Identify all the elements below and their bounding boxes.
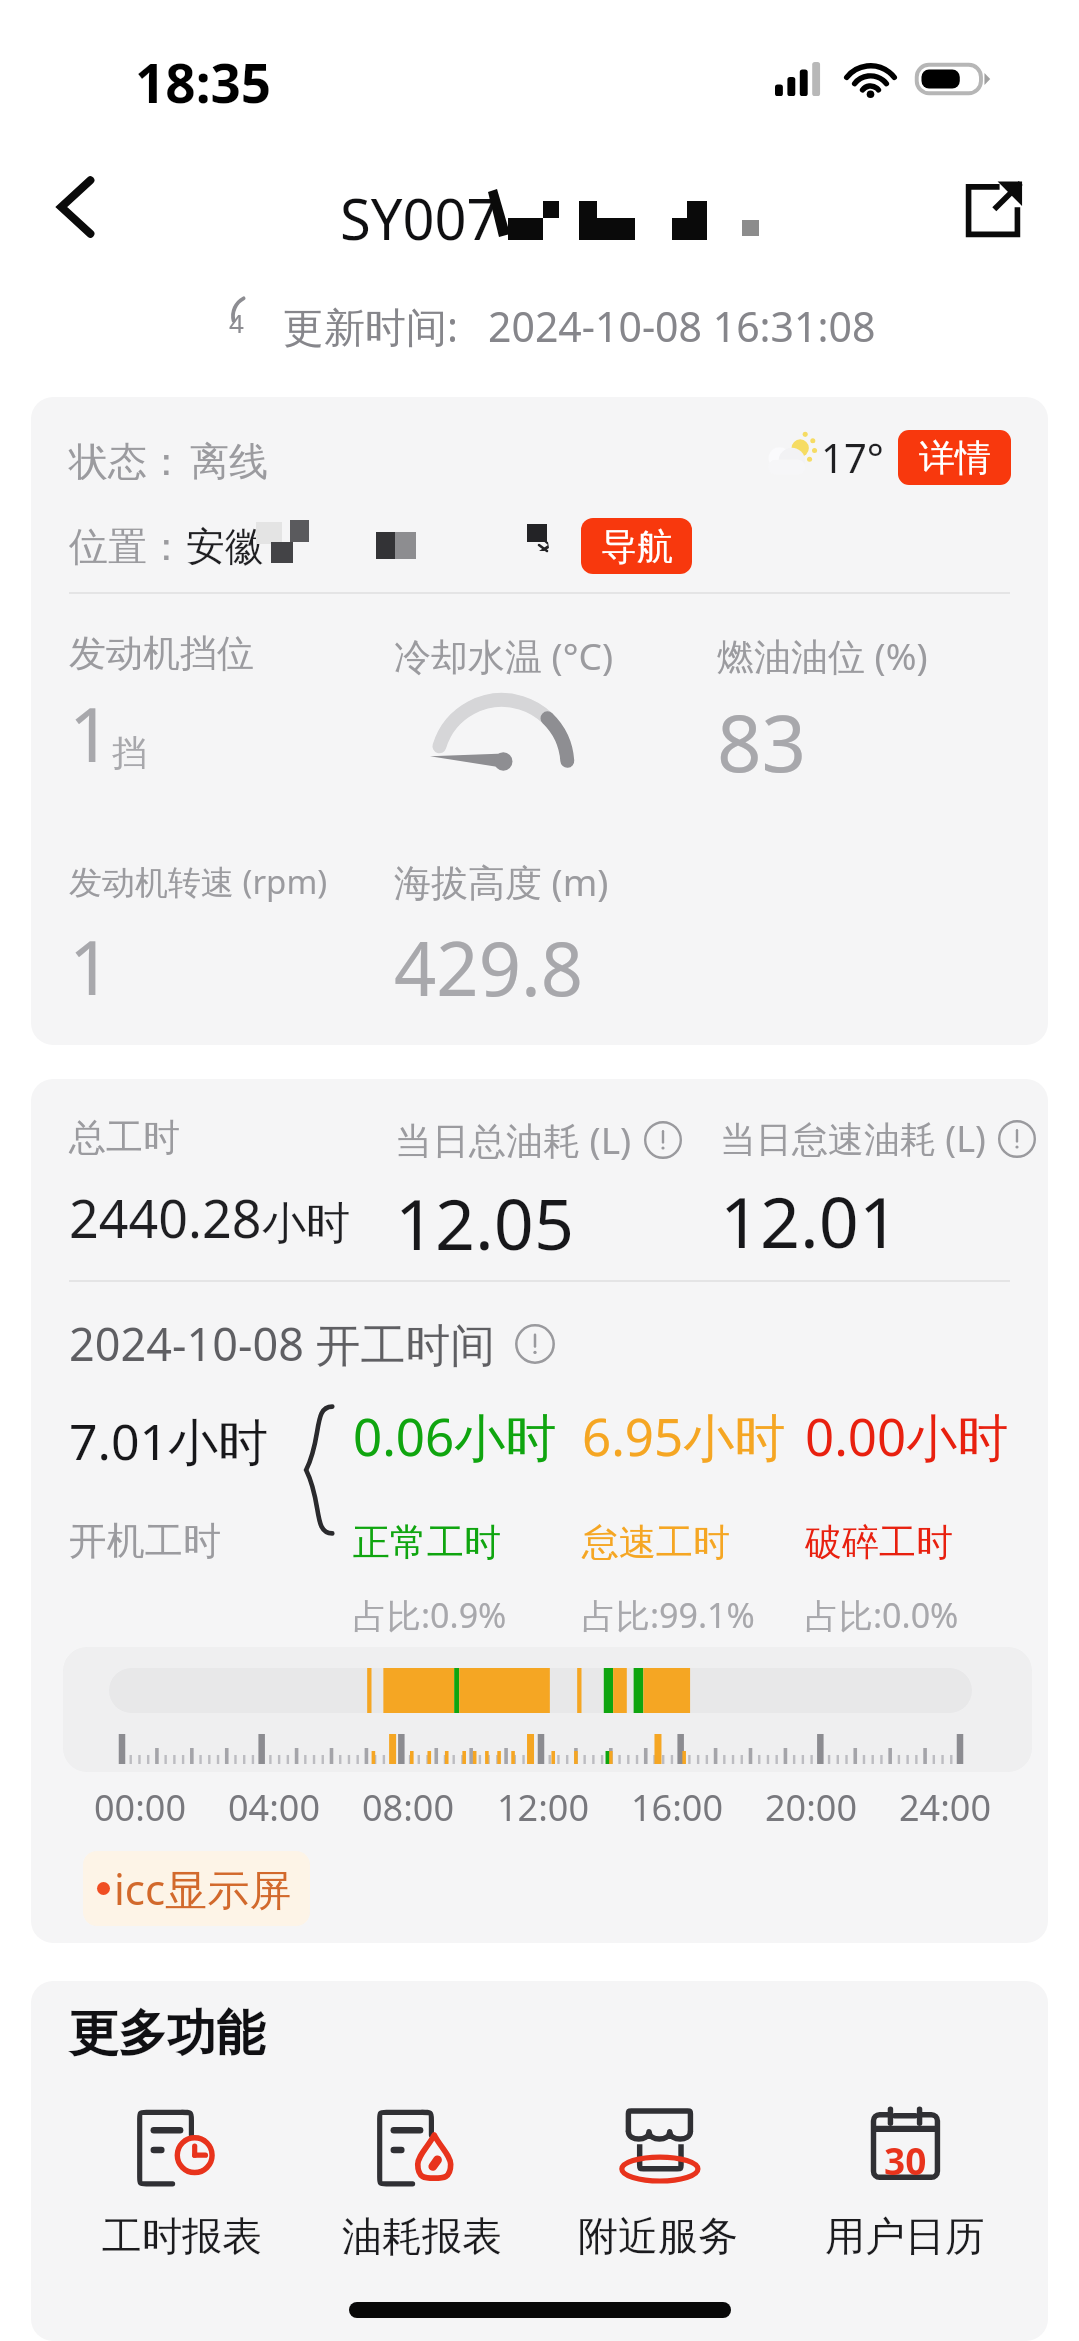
staticText: 占比:0.9%	[353, 1592, 507, 1638]
staticText: 12.01	[720, 1173, 899, 1268]
button[interactable]: icc显示屏	[83, 1851, 310, 1926]
staticText: 2024-10-08 开工时间	[69, 1313, 496, 1374]
staticText: 7.01小时	[69, 1407, 269, 1475]
staticText: 更多功能	[69, 2003, 265, 2065]
staticText: 2440.28	[69, 1182, 262, 1253]
staticText: 12:00	[497, 1783, 590, 1832]
staticText: 附近服务	[578, 2211, 738, 2261]
staticText: 油耗报表	[342, 2211, 502, 2261]
staticText: 海拔高度 (m)	[394, 856, 609, 907]
staticText: 破碎工时	[805, 1519, 953, 1566]
button[interactable]: Back	[16, 167, 136, 280]
staticText: 当日怠速油耗 (L)	[720, 1114, 986, 1163]
staticText: 12.05	[395, 1175, 574, 1270]
staticText: 更新时间:	[283, 298, 458, 354]
staticText: 冷却水温 (°C)	[394, 630, 614, 681]
staticText: 燃油油位 (%)	[717, 630, 928, 681]
staticText: 0.00小时	[805, 1401, 1009, 1471]
staticText: 占比:99.1%	[582, 1592, 755, 1638]
button[interactable]: 附近服务	[558, 2103, 758, 2261]
staticText: 1	[69, 683, 112, 784]
staticText: 详情	[919, 435, 991, 480]
staticText: 怠速工时	[582, 1519, 730, 1566]
staticText: 发动机转速 (rpm)	[69, 859, 328, 904]
button[interactable]: 油耗报表	[322, 2103, 522, 2261]
staticText: 24:00	[899, 1783, 992, 1832]
staticText: 位置：	[69, 522, 186, 571]
staticText: 状态：	[69, 437, 186, 486]
staticText: 4	[229, 305, 244, 340]
staticText: 08:00	[362, 1783, 455, 1832]
button[interactable]: 详情	[898, 430, 1011, 485]
staticText: icc显示屏	[114, 1860, 292, 1917]
staticText: 开机工时	[69, 1517, 221, 1565]
staticText: SY007	[340, 180, 499, 256]
staticText: 离线	[190, 437, 268, 486]
button[interactable]: 导航	[581, 518, 692, 574]
staticText: 2024-10-08 16:31:08	[488, 298, 876, 354]
staticText: 占比:0.0%	[805, 1592, 959, 1638]
staticText: 04:00	[228, 1783, 321, 1832]
staticText: 小时	[262, 1196, 350, 1251]
staticText: 00:00	[94, 1783, 187, 1832]
staticText: 17°	[821, 430, 884, 484]
staticText: 30	[884, 2135, 927, 2185]
staticText: 18:35	[135, 46, 272, 118]
staticText: 0.06小时	[353, 1401, 557, 1471]
staticText: 挡	[112, 731, 147, 775]
staticText: 20:00	[765, 1783, 858, 1832]
staticText: 16:00	[631, 1783, 724, 1832]
staticText: 当日总油耗 (L)	[395, 1114, 632, 1165]
staticText: 安徽	[186, 522, 264, 571]
staticText: 用户日历	[825, 2211, 985, 2261]
staticText: 1	[69, 916, 112, 1017]
button[interactable]: 30	[805, 2103, 1005, 2261]
staticText: 正常工时	[353, 1519, 501, 1566]
staticText: 83	[717, 689, 807, 795]
staticText: 导航	[601, 524, 673, 569]
staticText: 6.95小时	[582, 1401, 786, 1471]
staticText: 429.8	[394, 917, 584, 1018]
staticText: 工时报表	[102, 2211, 262, 2261]
button[interactable]: Share	[933, 150, 1053, 270]
button[interactable]: 工时报表	[82, 2103, 282, 2261]
staticText: 总工时	[69, 1114, 180, 1161]
staticText: 发动机挡位	[69, 630, 254, 677]
